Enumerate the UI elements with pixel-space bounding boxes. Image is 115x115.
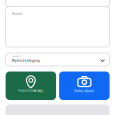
button[interactable]: Pobierz lokalizację bbox=[6, 71, 56, 100]
staticText: Pobierz lokalizację bbox=[18, 89, 43, 92]
staticText: Dodaj zdjęcie bbox=[74, 89, 94, 93]
button[interactable]: Kategoria bbox=[6, 53, 110, 66]
button[interactable]: Dodaj zdjęcie bbox=[59, 71, 110, 100]
staticText: Wybierz kategorię bbox=[12, 58, 40, 63]
staticText: Kategoria bbox=[12, 54, 21, 57]
staticText: Notatki bbox=[12, 12, 23, 16]
